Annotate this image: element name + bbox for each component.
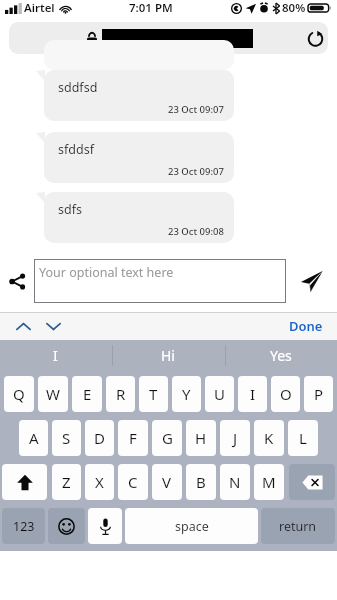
button[interactable]: sddfsd bbox=[44, 70, 234, 121]
staticText: G bbox=[162, 428, 173, 448]
button[interactable]: D bbox=[85, 420, 114, 456]
button[interactable]: W bbox=[38, 376, 68, 412]
button[interactable]: Yes bbox=[225, 340, 337, 370]
button[interactable]: X bbox=[85, 464, 114, 500]
staticText: J bbox=[233, 428, 238, 448]
staticText: Airtel bbox=[24, 0, 55, 16]
button[interactable]: R bbox=[106, 376, 135, 412]
button[interactable]: L bbox=[288, 420, 318, 456]
staticText: W bbox=[46, 384, 60, 404]
button[interactable]: T bbox=[139, 376, 168, 412]
button[interactable]: I bbox=[238, 376, 267, 412]
button[interactable]: V bbox=[152, 464, 182, 500]
staticText: B bbox=[196, 472, 206, 492]
staticText: E bbox=[83, 384, 92, 404]
button[interactable]: S bbox=[52, 420, 81, 456]
button[interactable]: Next field bbox=[40, 313, 66, 339]
button[interactable]: Backspace bbox=[289, 464, 335, 500]
button[interactable]: U bbox=[205, 376, 234, 412]
button[interactable]: Hi bbox=[112, 340, 224, 370]
staticText: C bbox=[128, 472, 138, 492]
button[interactable]: P bbox=[304, 376, 333, 412]
staticText: S bbox=[62, 428, 71, 448]
button[interactable]: M bbox=[254, 464, 284, 500]
staticText: H bbox=[195, 428, 207, 448]
staticText: T bbox=[149, 384, 158, 404]
button[interactable]: 123 bbox=[2, 508, 45, 544]
staticText: sddfsd bbox=[58, 79, 98, 96]
staticText: 23 Oct 09:08 bbox=[168, 225, 224, 238]
button[interactable]: B bbox=[186, 464, 216, 500]
staticText: Z bbox=[62, 472, 71, 492]
button[interactable]: Previous field bbox=[10, 313, 36, 339]
button[interactable]: I bbox=[0, 340, 111, 370]
staticText: X bbox=[95, 472, 104, 492]
staticText: N bbox=[229, 472, 241, 492]
button[interactable]: Reload bbox=[302, 25, 328, 51]
staticText: V bbox=[162, 472, 172, 492]
button[interactable]: Emoji bbox=[48, 508, 85, 544]
staticText: Q bbox=[13, 384, 25, 404]
button[interactable]: sfddsf bbox=[44, 132, 234, 183]
button[interactable]: return bbox=[261, 508, 335, 544]
button[interactable]: Y bbox=[172, 376, 201, 412]
button[interactable]: K bbox=[254, 420, 284, 456]
button[interactable]: N bbox=[220, 464, 250, 500]
button[interactable]: H bbox=[186, 420, 216, 456]
button[interactable]: C bbox=[118, 464, 148, 500]
staticText: 123 bbox=[13, 518, 35, 535]
button[interactable]: Share bbox=[0, 264, 34, 298]
staticText: 23 Oct 09:07 bbox=[168, 165, 224, 178]
button[interactable]: F bbox=[118, 420, 148, 456]
button[interactable]: Address bar bbox=[9, 22, 328, 54]
staticText: 7:01 PM bbox=[129, 0, 173, 16]
staticText: return bbox=[279, 518, 317, 535]
staticText: O bbox=[280, 384, 292, 404]
button[interactable]: G bbox=[152, 420, 182, 456]
staticText: I bbox=[250, 384, 256, 404]
button[interactable]: Send bbox=[286, 263, 337, 299]
button[interactable]: J bbox=[220, 420, 250, 456]
staticText: I bbox=[53, 346, 58, 365]
staticText: P bbox=[314, 384, 324, 404]
button[interactable]: O bbox=[271, 376, 300, 412]
staticText: sdfs bbox=[58, 201, 82, 218]
staticText: M bbox=[262, 472, 276, 492]
staticText: space bbox=[175, 518, 209, 535]
staticText: K bbox=[264, 428, 274, 448]
staticText: A bbox=[29, 428, 39, 448]
button[interactable]: A bbox=[19, 420, 48, 456]
button[interactable]: Z bbox=[52, 464, 81, 500]
staticText: U bbox=[214, 384, 225, 404]
staticText: Your optional text here bbox=[39, 264, 174, 281]
staticText: sfddsf bbox=[58, 141, 94, 158]
staticText: Y bbox=[182, 384, 191, 404]
button[interactable]: sdfs bbox=[44, 192, 234, 243]
button[interactable]: Q bbox=[4, 376, 34, 412]
button[interactable]: Your optional text here bbox=[34, 259, 286, 303]
button[interactable]: space bbox=[125, 508, 258, 544]
button[interactable]: Shift bbox=[2, 464, 47, 500]
staticText: 23 Oct 09:07 bbox=[168, 103, 224, 116]
staticText: D bbox=[94, 428, 105, 448]
button[interactable]: Done bbox=[285, 314, 327, 338]
button[interactable]: E bbox=[72, 376, 102, 412]
button[interactable]: Dictation bbox=[88, 508, 122, 544]
staticText: Yes bbox=[270, 346, 292, 365]
staticText: R bbox=[116, 384, 126, 404]
staticText: F bbox=[129, 428, 137, 448]
staticText: L bbox=[299, 428, 307, 448]
staticText: Done bbox=[289, 317, 323, 335]
staticText: 80% bbox=[282, 0, 306, 16]
staticText: Hi bbox=[161, 346, 175, 365]
